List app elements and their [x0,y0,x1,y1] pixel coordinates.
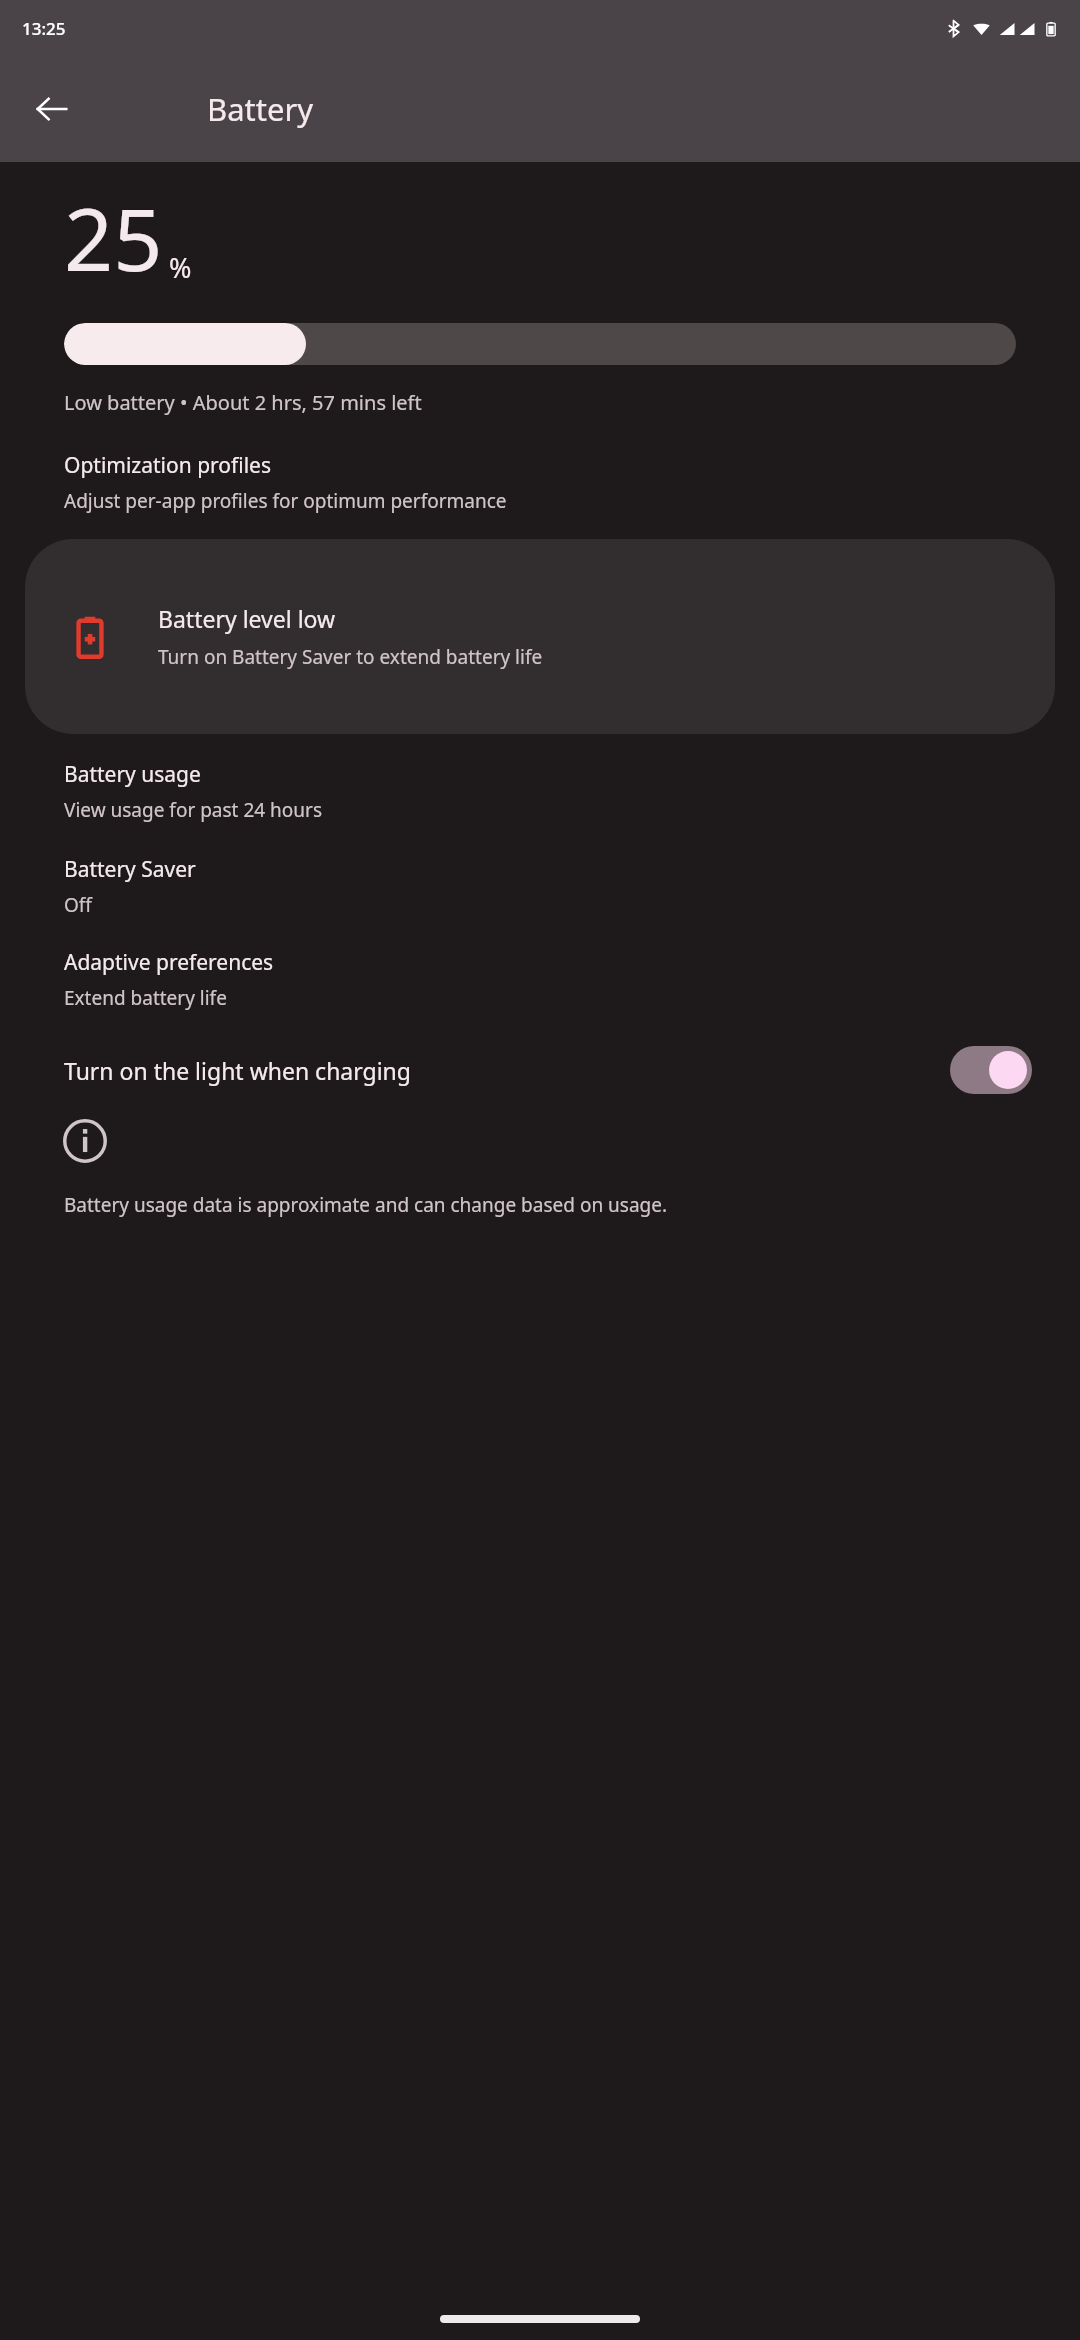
staticText: Adjust per-app profiles for optimum perf… [64,488,507,514]
staticText: Optimization profiles [64,451,271,480]
staticText: Turn on the light when charging [64,1055,950,1086]
staticText: Extend battery life [64,985,227,1011]
staticText: 25 [64,179,163,296]
button[interactable]: Adaptive preferences [0,944,1080,1015]
button[interactable]: Back [24,81,80,137]
staticText: Battery usage [64,760,201,789]
button[interactable]: Optimization profiles [0,447,1080,518]
staticText: Battery usage data is approximate and ca… [64,1192,668,1218]
button[interactable]: Turn on the light when charging [0,1040,1080,1100]
staticText: Adaptive preferences [64,948,274,977]
staticText: % [169,249,192,286]
staticText: Turn on Battery Saver to extend battery … [158,644,543,670]
staticText: Off [64,892,92,918]
button[interactable]: Battery usage [0,756,1080,827]
staticText: Battery Saver [64,855,196,884]
staticText: View usage for past 24 hours [64,797,323,823]
staticText: Low battery • About 2 hrs, 57 mins left [64,389,422,416]
staticText: Battery [207,88,314,130]
staticText: Battery level low [158,603,336,634]
button[interactable]: Battery Saver [0,851,1080,922]
button[interactable]: Battery level low [25,539,1055,734]
staticText: 13:25 [22,17,66,40]
